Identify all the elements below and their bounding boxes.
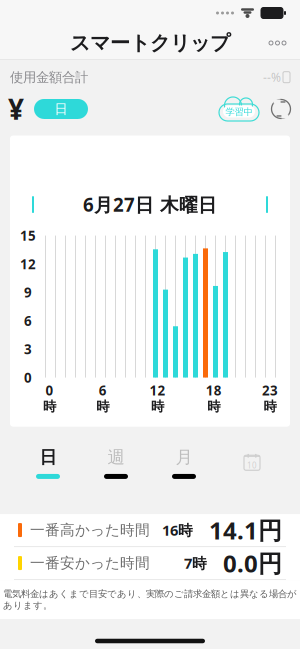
button[interactable]: 月 [150,441,218,485]
staticText: 0.0円 [223,547,282,579]
staticText: 0 [45,382,53,399]
staticText: 週 [107,447,124,468]
staticText: 6 [99,382,107,399]
staticText: 使用金額合計 [10,69,88,85]
staticText: ¥ [8,90,24,128]
staticText: 0 [24,369,32,386]
staticText: 12 [20,255,36,273]
staticText: スマートクリップ [70,31,230,55]
staticText: 時 [151,398,164,415]
staticText: 日 [54,101,67,117]
staticText: 日 [39,447,56,468]
staticText: 一番高かった時間 [30,521,150,539]
staticText: 23 [262,382,278,399]
button[interactable]: Previous day [18,188,52,222]
staticText: 時 [263,398,276,415]
staticText: 9 [24,283,32,301]
button[interactable]: Pick date [218,447,286,479]
staticText: 18 [206,382,222,399]
staticText: 12 [149,382,165,399]
button[interactable]: 日 [34,99,88,119]
staticText: 時 [96,398,109,415]
staticText: 時 [43,398,56,415]
button[interactable]: 日 [14,441,82,485]
staticText: 16時 [162,520,193,540]
staticText: 学習中 [225,106,252,118]
button[interactable]: Next day [248,188,282,222]
staticText: 月 [175,447,192,468]
staticText: 一番安かった時間 [30,554,150,572]
button[interactable]: Learning status [218,95,260,123]
staticText: 6月27日 木曜日 [83,192,217,217]
button[interactable]: 週 [82,441,150,485]
staticText: 7時 [184,553,207,573]
staticText: 6 [24,312,32,330]
staticText: 15 [20,227,36,244]
button[interactable]: Refresh [260,96,300,122]
staticText: 14.1円 [209,514,282,546]
staticText: 電気料金はあくまで目安であり、実際のご請求金額とは異なる場合があります。 [3,588,297,611]
staticText: 10 [247,460,257,471]
staticText: --% [263,69,281,85]
button[interactable]: More options [259,31,296,55]
staticText: 3 [24,340,32,358]
staticText: 時 [207,398,220,415]
